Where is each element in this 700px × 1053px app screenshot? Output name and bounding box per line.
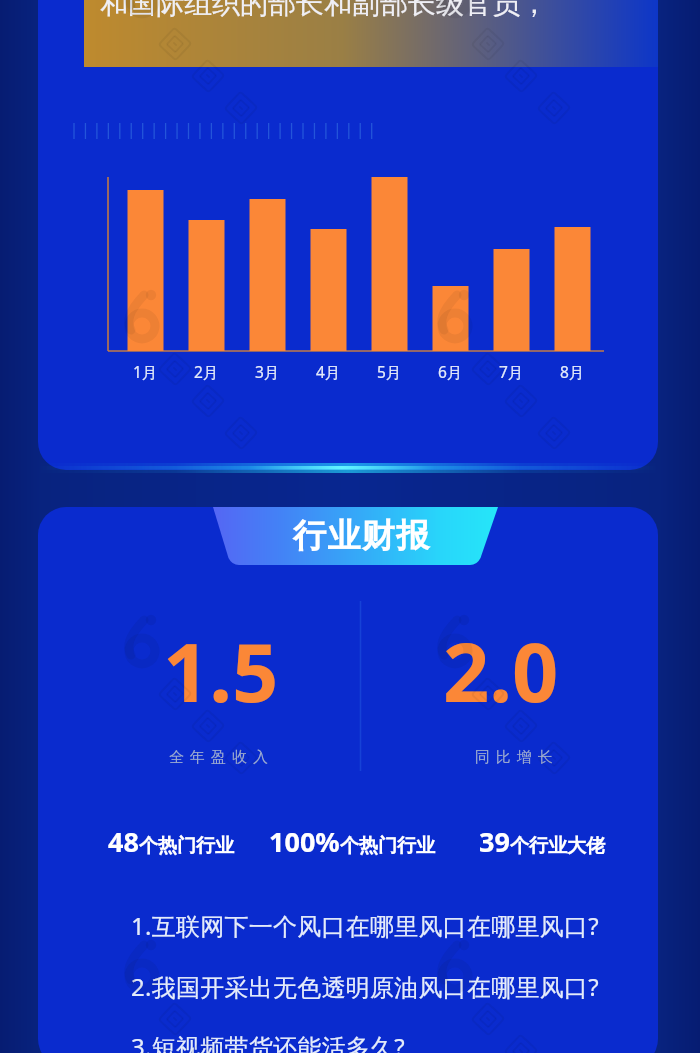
- button[interactable]: 48: [108, 823, 234, 860]
- staticText: 3月: [255, 361, 280, 382]
- staticText: 同比增长: [472, 748, 556, 767]
- staticText: 100%: [269, 823, 340, 860]
- staticText: 2月: [194, 361, 219, 382]
- staticText: 2.0: [443, 615, 559, 725]
- staticText: 个热门行业: [340, 834, 435, 858]
- staticText: 1.5: [163, 615, 279, 725]
- staticText: 个热门行业: [139, 834, 234, 858]
- staticText: 全年盈收入: [166, 748, 271, 767]
- staticText: 7月: [499, 361, 524, 382]
- button[interactable]: 2.我国开采出无色透明原油风口在哪里风口?: [90, 964, 610, 1012]
- staticText: 39: [479, 823, 510, 860]
- staticText: 1月: [133, 361, 158, 382]
- staticText: 3.短视频带货还能活多久?: [131, 1030, 405, 1053]
- staticText: 和国际组织的部长和副部长级官员，: [100, 0, 548, 21]
- button[interactable]: 1.互联网下一个风口在哪里风口在哪里风口?: [90, 903, 610, 951]
- button[interactable]: 2.0: [360, 605, 650, 775]
- button[interactable]: 100%: [269, 823, 435, 860]
- staticText: 1.互联网下一个风口在哪里风口在哪里风口?: [131, 909, 599, 942]
- staticText: 2.我国开采出无色透明原油风口在哪里风口?: [131, 970, 599, 1003]
- button[interactable]: 39: [479, 823, 605, 860]
- button[interactable]: 行业财报: [213, 507, 498, 565]
- staticText: 6月: [438, 361, 463, 382]
- staticText: 5月: [377, 361, 402, 382]
- staticText: 8月: [560, 361, 585, 382]
- staticText: 4月: [316, 361, 341, 382]
- button[interactable]: 1.5: [70, 605, 360, 775]
- staticText: 48: [108, 823, 139, 860]
- staticText: 行业财报: [293, 515, 431, 557]
- staticText: 个行业大佬: [510, 834, 605, 858]
- button[interactable]: 3.短视频带货还能活多久?: [90, 1024, 610, 1053]
